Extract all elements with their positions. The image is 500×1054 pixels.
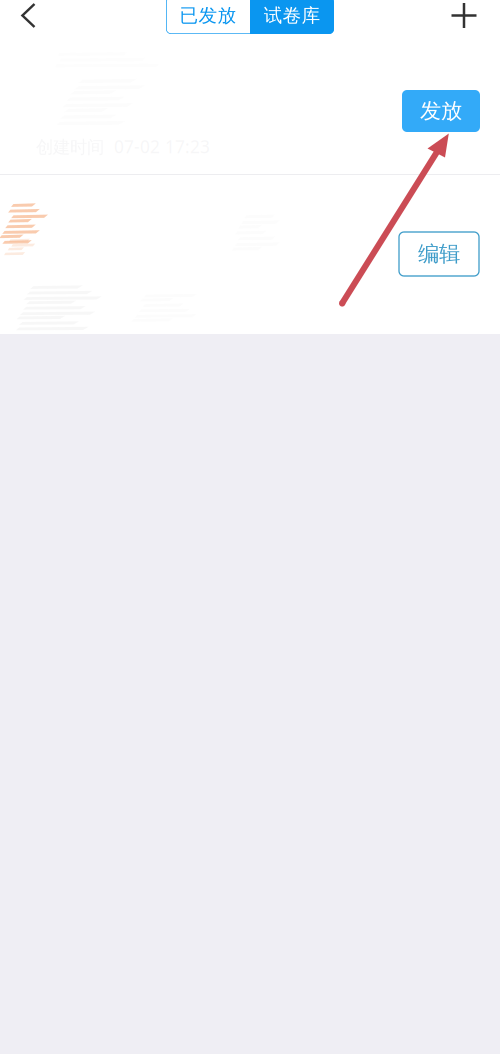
button[interactable]: 试卷库 xyxy=(250,0,334,34)
button[interactable]: Add xyxy=(428,0,500,31)
button[interactable]: Back xyxy=(0,0,56,31)
button[interactable]: 发放 xyxy=(402,90,480,132)
button[interactable]: 试卷 2 xyxy=(0,175,500,334)
button[interactable]: 编辑 xyxy=(399,232,479,276)
staticText: 试卷库 xyxy=(263,4,320,27)
button[interactable]: 已发放 xyxy=(166,0,250,34)
staticText: 发放 xyxy=(420,98,462,124)
staticText: 已发放 xyxy=(179,4,236,27)
staticText: 编辑 xyxy=(418,241,460,267)
button[interactable]: 试卷 1 xyxy=(0,34,500,174)
